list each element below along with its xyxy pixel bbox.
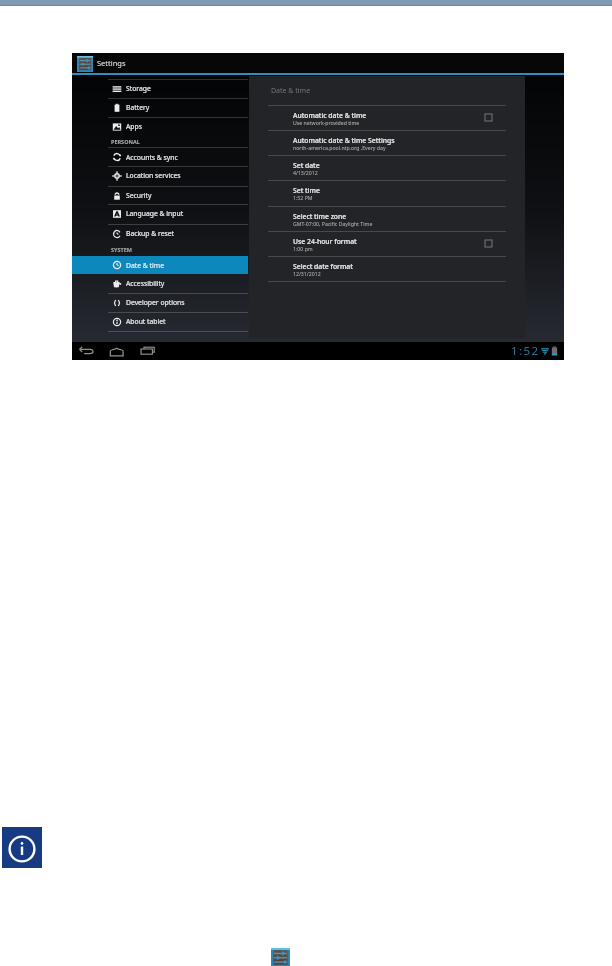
- staticText: Use 24-hour format: [293, 237, 357, 246]
- button[interactable]: Back: [78, 346, 95, 357]
- staticText: Automatic date & time Settings: [293, 136, 395, 145]
- staticText: Accessibility: [126, 279, 165, 288]
- staticText: Storage: [126, 84, 151, 93]
- staticText: 1:52 PM: [293, 194, 313, 201]
- staticText: 12/31/2012: [293, 270, 321, 277]
- staticText: 1:52: [511, 343, 540, 359]
- button[interactable]: Automatic date & time: [249, 105, 525, 130]
- button[interactable]: Apps: [72, 117, 248, 136]
- staticText: Set date: [293, 161, 320, 170]
- staticText: Select time zone: [293, 212, 347, 221]
- staticText: About tablet: [126, 317, 166, 326]
- staticText: Security: [126, 191, 152, 200]
- button[interactable]: Battery: [72, 98, 248, 117]
- staticText: Date & time: [271, 86, 311, 96]
- button[interactable]: Automatic date & time Settings: [249, 130, 525, 155]
- staticText: Location services: [126, 171, 181, 180]
- button[interactable]: About tablet: [72, 312, 248, 331]
- button[interactable]: Home: [109, 347, 126, 357]
- staticText: Use network-provided time: [293, 119, 360, 126]
- staticText: PERSONAL: [111, 138, 140, 145]
- button[interactable]: Language & input: [72, 204, 248, 223]
- button[interactable]: Set time: [249, 180, 525, 205]
- staticText: Language & input: [126, 209, 184, 218]
- staticText: Set time: [293, 186, 320, 195]
- button[interactable]: Accessibility: [72, 274, 248, 293]
- button[interactable]: Select date format: [249, 256, 525, 281]
- button[interactable]: Developer options: [72, 293, 248, 312]
- staticText: Select date format: [293, 262, 353, 271]
- button[interactable]: Date & time: [72, 256, 248, 274]
- staticText: Battery: [126, 103, 150, 112]
- button[interactable]: Accounts & sync: [72, 147, 248, 167]
- staticText: 1:00 pm: [293, 245, 313, 252]
- staticText: 4/13/2012: [293, 169, 318, 176]
- staticText: Backup & reset: [126, 229, 175, 238]
- staticText: Apps: [126, 122, 142, 131]
- staticText: Developer options: [126, 298, 185, 307]
- staticText: Automatic date & time: [293, 111, 367, 120]
- button[interactable]: Recent apps: [140, 346, 156, 358]
- staticText: GMT-07:00, Pacific Daylight Time: [293, 220, 373, 227]
- button[interactable]: Settings: [271, 948, 290, 966]
- staticText: Date & time: [126, 261, 164, 270]
- button[interactable]: Info: [2, 827, 42, 868]
- button[interactable]: Backup & reset: [72, 224, 248, 243]
- staticText: north-america.pool.ntp.org ,Every day: [293, 144, 386, 151]
- staticText: Accounts & sync: [126, 153, 178, 162]
- button[interactable]: Set date: [249, 155, 525, 180]
- button[interactable]: Select time zone: [249, 206, 525, 231]
- staticText: Settings: [97, 58, 126, 68]
- button[interactable]: Use 24-hour format: [249, 231, 525, 256]
- button[interactable]: Storage: [72, 79, 248, 98]
- button[interactable]: Security: [72, 186, 248, 205]
- button[interactable]: Location services: [72, 166, 248, 185]
- staticText: SYSTEM: [111, 246, 132, 253]
